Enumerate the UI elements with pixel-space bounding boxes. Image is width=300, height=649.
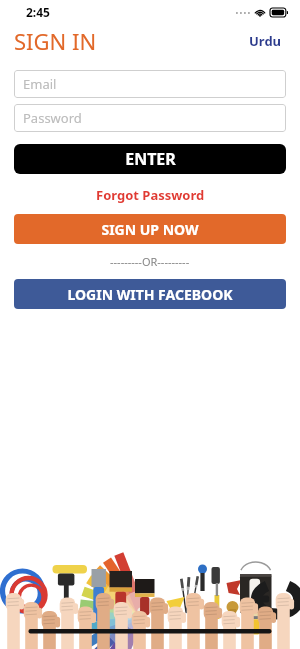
- staticText: Forgot Password: [96, 186, 205, 204]
- staticText: SIGN IN: [14, 26, 97, 56]
- staticText: Email: [23, 75, 57, 93]
- staticText: ENTER: [125, 148, 176, 170]
- staticText: Urdu: [249, 32, 282, 50]
- button[interactable]: Email: [14, 70, 286, 98]
- button[interactable]: Urdu: [245, 28, 286, 54]
- staticText: SIGN UP NOW: [101, 220, 199, 239]
- button[interactable]: Password: [14, 104, 286, 132]
- button[interactable]: LOGIN WITH FACEBOOK: [14, 279, 286, 309]
- button[interactable]: ENTER: [14, 144, 286, 174]
- staticText: LOGIN WITH FACEBOOK: [67, 285, 233, 304]
- button[interactable]: SIGN UP NOW: [14, 214, 286, 244]
- staticText: ---------OR---------: [110, 254, 190, 269]
- staticText: Password: [23, 109, 82, 127]
- staticText: 2:45: [26, 4, 50, 20]
- button[interactable]: Forgot Password: [0, 182, 300, 208]
